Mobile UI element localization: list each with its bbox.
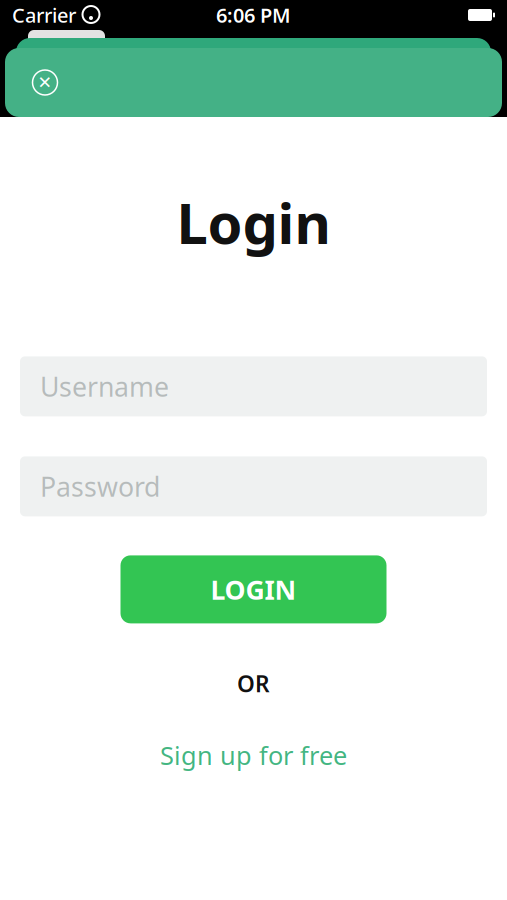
staticText: 6:06 PM	[216, 2, 291, 28]
staticText: Password	[40, 469, 160, 504]
staticText: Login	[176, 185, 330, 259]
staticText: Sign up for free	[160, 738, 347, 772]
staticText: LOGIN	[210, 572, 296, 607]
button[interactable]: Sign up for free	[136, 728, 371, 782]
button[interactable]: LOGIN	[120, 555, 386, 623]
staticText: OR	[237, 668, 270, 698]
staticText: Carrier	[12, 2, 76, 28]
button[interactable]: Username	[20, 356, 487, 416]
button[interactable]: Password	[20, 456, 487, 516]
staticText: Username	[40, 369, 169, 404]
staticText: ✕	[37, 73, 52, 92]
button[interactable]: Close	[23, 60, 67, 104]
